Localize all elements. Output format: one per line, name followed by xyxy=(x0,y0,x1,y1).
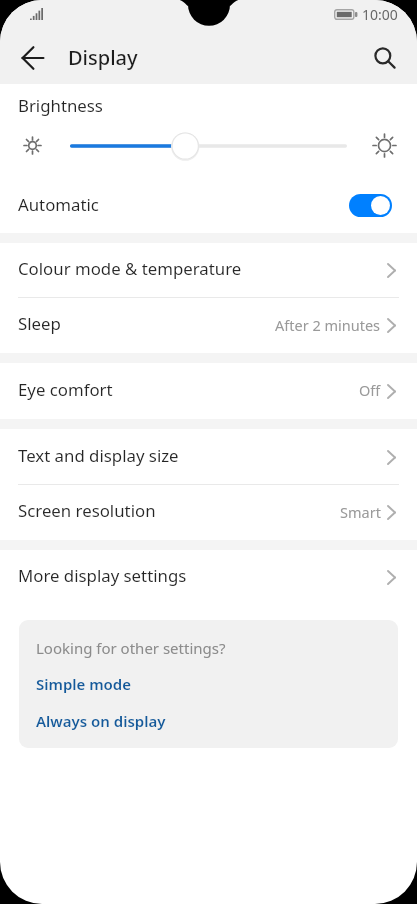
button[interactable]: Automatic xyxy=(0,178,417,233)
staticText: After 2 minutes xyxy=(275,315,381,335)
staticText: Smart xyxy=(340,502,381,522)
button[interactable]: More display settings xyxy=(0,550,417,605)
staticText: Eye comfort xyxy=(18,378,113,401)
staticText: Automatic xyxy=(18,193,99,216)
button[interactable]: Screen resolution xyxy=(0,485,417,540)
staticText: 10:00 xyxy=(362,5,398,24)
staticText: Brightness xyxy=(18,94,103,117)
button[interactable]: Text and display size xyxy=(0,429,417,485)
button[interactable]: Search xyxy=(364,37,406,79)
button[interactable]: Back xyxy=(12,37,54,79)
staticText: More display settings xyxy=(18,564,187,587)
staticText: Looking for other settings? xyxy=(36,638,226,658)
staticText: Sleep xyxy=(18,312,61,335)
staticText: Always on display xyxy=(36,711,166,731)
button[interactable]: Eye comfort xyxy=(0,363,417,419)
button[interactable]: Simple mode xyxy=(36,674,132,694)
staticText: Off xyxy=(359,380,381,400)
button[interactable]: Colour mode & temperature xyxy=(0,243,417,298)
button[interactable]: Sleep xyxy=(0,298,417,353)
staticText: Simple mode xyxy=(36,674,132,694)
staticText: Colour mode & temperature xyxy=(18,257,242,280)
staticText: Text and display size xyxy=(18,444,179,467)
button[interactable]: Automatic brightness xyxy=(349,194,392,217)
staticText: Display xyxy=(68,44,138,71)
staticText: Screen resolution xyxy=(18,499,156,522)
button[interactable]: Always on display xyxy=(36,711,166,731)
